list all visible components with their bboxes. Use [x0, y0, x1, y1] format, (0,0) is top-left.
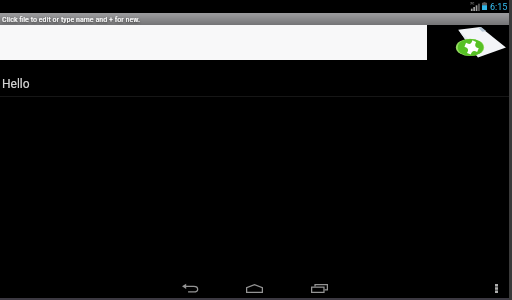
staticText: Hello — [2, 77, 30, 91]
button[interactable]: More options — [487, 277, 506, 299]
staticText: Click file to edit or type name and + fo… — [2, 15, 141, 24]
button[interactable]: New file — [456, 25, 508, 59]
button[interactable]: Recent apps — [301, 277, 337, 299]
button[interactable]: Hello — [0, 60, 512, 96]
staticText: 6:15 — [490, 2, 508, 13]
button[interactable]: Back — [172, 277, 208, 299]
button[interactable]: Home — [236, 277, 272, 299]
